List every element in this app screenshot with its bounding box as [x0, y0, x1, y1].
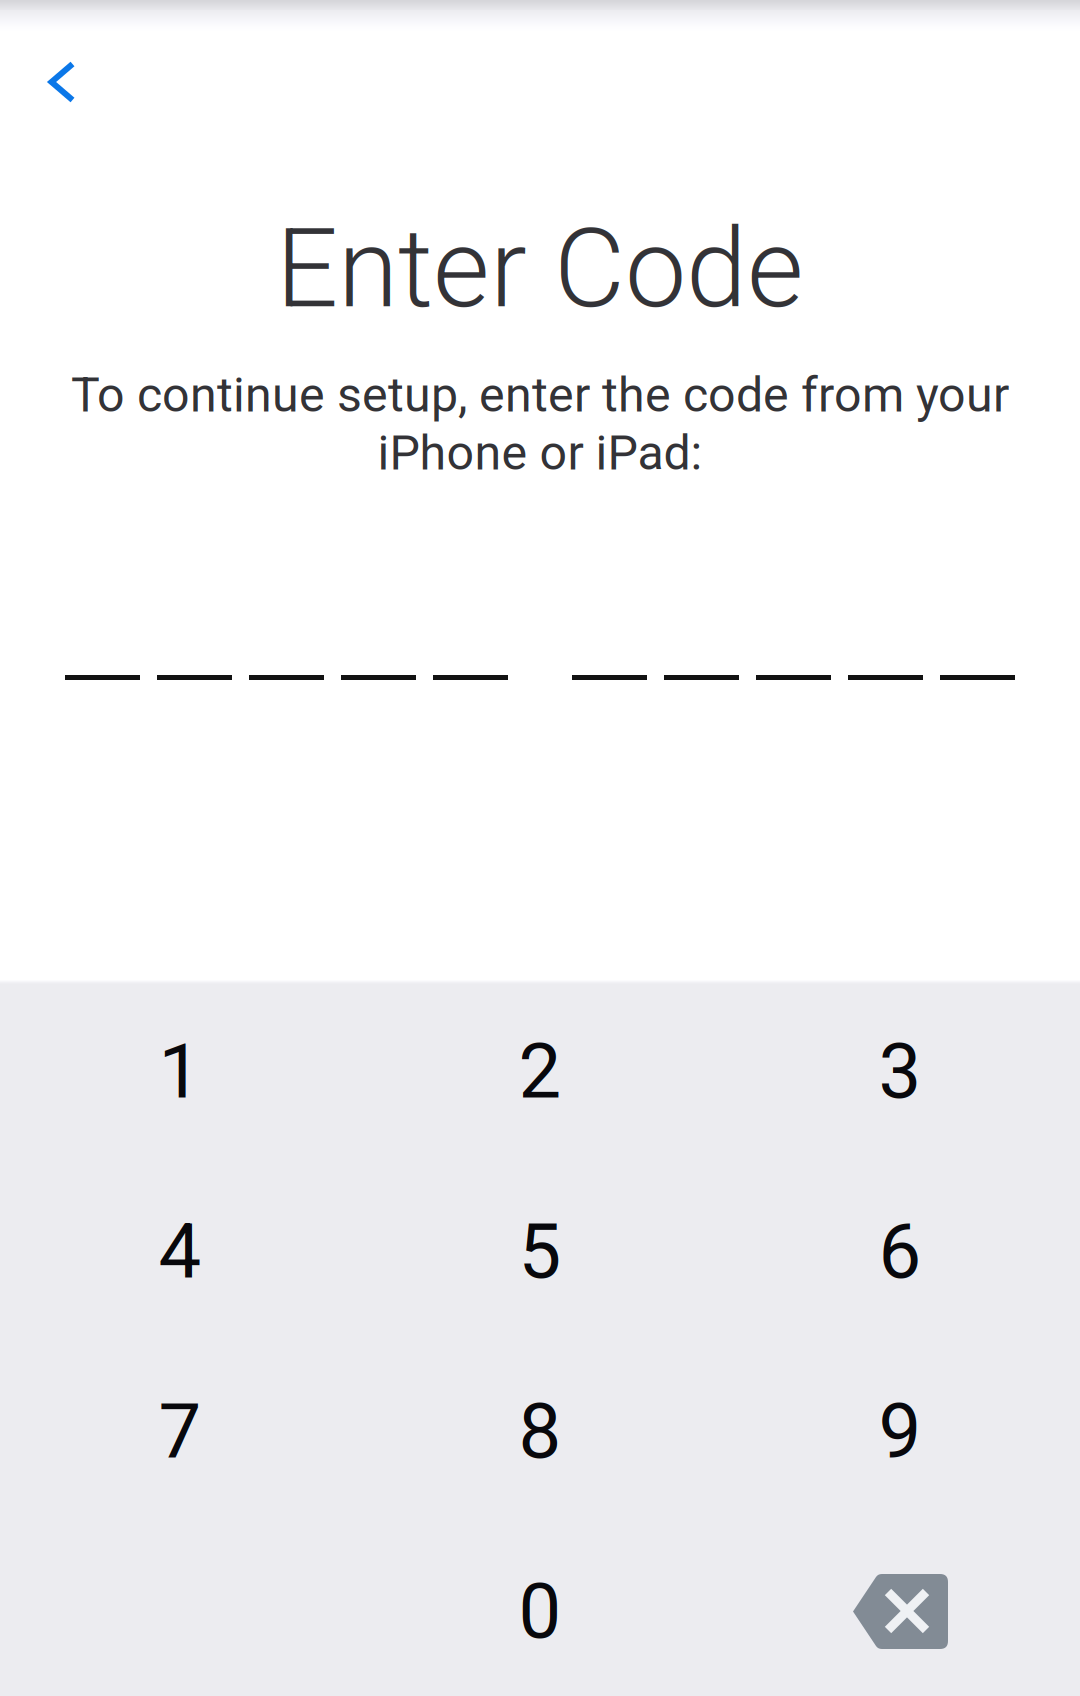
button[interactable]: 1: [0, 981, 360, 1161]
staticText: 0: [518, 1567, 561, 1656]
button[interactable]: 6: [720, 1161, 1080, 1341]
button[interactable]: 7: [0, 1341, 360, 1521]
staticText: 7: [158, 1387, 201, 1476]
staticText: To continue setup, enter the code from y…: [71, 367, 1009, 423]
staticText: 9: [878, 1387, 921, 1476]
staticText: 5: [518, 1207, 561, 1296]
button[interactable]: 4: [0, 1161, 360, 1341]
button[interactable]: 5: [360, 1161, 720, 1341]
button[interactable]: 0: [360, 1521, 720, 1696]
button[interactable]: 9: [720, 1341, 1080, 1521]
button[interactable]: 8: [360, 1341, 720, 1521]
staticText: Enter Code: [276, 205, 804, 333]
staticText: 1: [158, 1027, 201, 1116]
staticText: iPhone or iPad:: [377, 425, 702, 481]
staticText: 3: [878, 1027, 921, 1116]
staticText: 4: [158, 1207, 201, 1296]
button[interactable]: Back: [7, 27, 117, 137]
staticText: 2: [518, 1027, 561, 1116]
staticText: 6: [878, 1207, 921, 1296]
staticText: 8: [518, 1387, 561, 1476]
button[interactable]: 2: [360, 981, 720, 1161]
button[interactable]: 3: [720, 981, 1080, 1161]
button[interactable]: Delete: [720, 1521, 1080, 1696]
